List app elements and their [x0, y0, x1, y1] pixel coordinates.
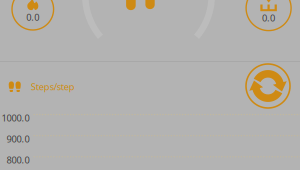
button[interactable]: Steps/step	[9, 80, 75, 93]
staticText: 1000.0	[1, 112, 29, 124]
staticText: 0.0	[26, 11, 39, 23]
staticText: 900.0	[6, 133, 29, 145]
staticText: Steps/step	[31, 80, 75, 93]
button[interactable]: Refresh	[245, 63, 291, 109]
staticText: 800.0	[6, 154, 29, 166]
staticText: 0.0	[262, 12, 275, 24]
